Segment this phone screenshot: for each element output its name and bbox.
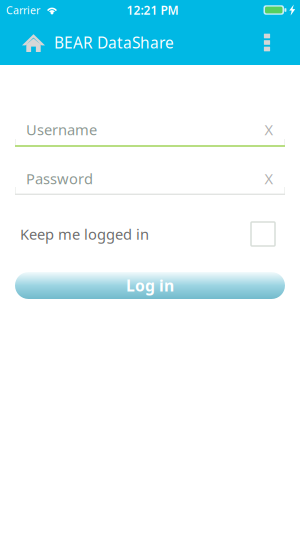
- staticText: X: [264, 119, 273, 139]
- staticText: Keep me logged in: [20, 224, 149, 244]
- button[interactable]: Log in: [15, 272, 285, 299]
- button[interactable]: Clear Username: [256, 114, 282, 144]
- button[interactable]: Menu: [246, 20, 288, 65]
- staticText: Log in: [126, 275, 174, 296]
- staticText: X: [264, 168, 273, 188]
- staticText: Carrier: [6, 3, 40, 17]
- button[interactable]: Home: [22, 20, 45, 65]
- button[interactable]: Clear Password: [256, 163, 282, 193]
- staticText: Password: [26, 168, 93, 188]
- button[interactable]: Keep me logged in: [15, 215, 285, 253]
- staticText: BEAR DataShare: [54, 32, 174, 53]
- staticText: 12:21 PM: [126, 2, 178, 18]
- staticText: Username: [26, 119, 97, 139]
